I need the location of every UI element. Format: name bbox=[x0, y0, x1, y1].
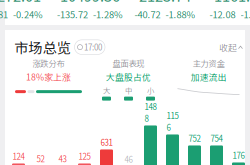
staticText: 主力资金 bbox=[192, 57, 224, 69]
staticText: 631 bbox=[100, 136, 112, 148]
staticText: 小 bbox=[147, 85, 154, 96]
staticText: 盘面表现 bbox=[112, 57, 144, 69]
button[interactable]: 1161.11 bbox=[202, 0, 250, 25]
staticText: 涨跌分布 bbox=[32, 57, 64, 69]
staticText: 46 bbox=[124, 153, 132, 165]
staticText: -12.08 bbox=[209, 7, 235, 21]
button[interactable]: 主力资金 bbox=[168, 57, 248, 99]
staticText: 18%家上涨 bbox=[26, 70, 71, 83]
staticText: 加速流出 bbox=[190, 70, 226, 83]
staticText: -0.24% bbox=[13, 7, 43, 21]
button[interactable]: 2123.74 bbox=[127, 0, 202, 25]
staticText: 2123.74 bbox=[139, 0, 191, 6]
staticText: 754 bbox=[210, 132, 222, 144]
staticText: 1488 bbox=[144, 101, 156, 124]
staticText: 125 bbox=[78, 150, 90, 162]
button[interactable]: 10499.36 bbox=[52, 0, 127, 25]
staticText: 176 bbox=[232, 149, 244, 161]
staticText: 收起 bbox=[219, 41, 237, 53]
staticText: 大盘股占优 bbox=[106, 70, 151, 83]
staticText: 1156 bbox=[166, 110, 178, 133]
staticText: 52 bbox=[36, 153, 44, 164]
staticText: 752 bbox=[188, 132, 200, 144]
staticText: 10499.36 bbox=[60, 0, 120, 6]
staticText: -135.72 bbox=[57, 7, 88, 21]
staticText: 1161.11 bbox=[214, 0, 250, 6]
staticText: 124 bbox=[12, 150, 24, 162]
button[interactable]: 盘面表现 bbox=[88, 57, 168, 99]
button[interactable]: 3272.01 bbox=[0, 0, 52, 25]
staticText: -40.72 bbox=[134, 7, 160, 21]
staticText: -1.28% bbox=[93, 7, 123, 21]
staticText: -1.03% bbox=[240, 7, 250, 21]
staticText: 43 bbox=[58, 153, 66, 164]
staticText: 17:00 bbox=[84, 41, 102, 53]
staticText: 中 bbox=[125, 85, 132, 96]
staticText: 市场总览 bbox=[14, 37, 70, 57]
staticText: 大 bbox=[103, 85, 110, 96]
staticText: -1.88% bbox=[165, 7, 195, 21]
staticText: -7.81 bbox=[0, 7, 8, 21]
button[interactable]: 收起 bbox=[219, 41, 242, 53]
staticText: 3272.01 bbox=[0, 0, 41, 6]
button[interactable]: 涨跌分布 bbox=[8, 57, 88, 99]
